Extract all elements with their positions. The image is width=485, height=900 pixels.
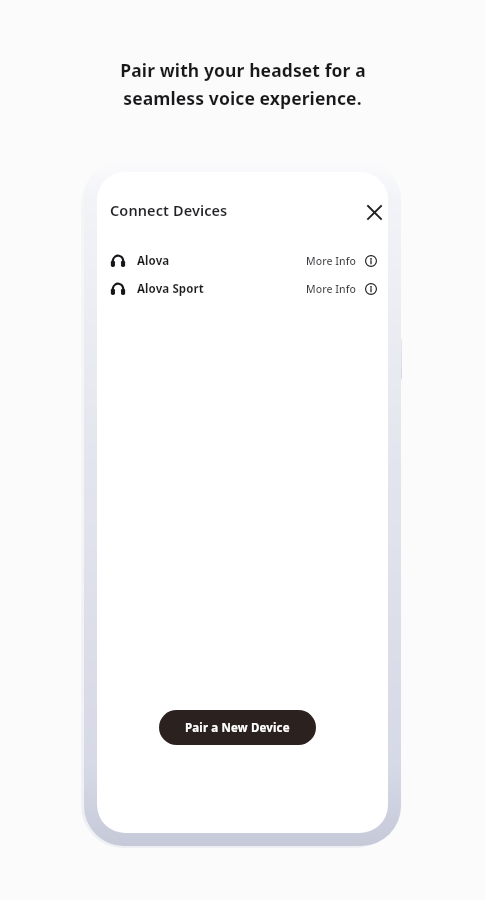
staticText: Alova: [137, 253, 170, 269]
button[interactable]: More Info: [365, 283, 377, 295]
staticText: seamless voice experience.: [123, 86, 362, 110]
staticText: Pair a New Device: [185, 720, 290, 736]
button[interactable]: Close: [360, 198, 388, 226]
staticText: Connect Devices: [110, 200, 228, 220]
button[interactable]: Alova: [97, 248, 388, 274]
staticText: Alova Sport: [137, 281, 204, 297]
staticText: Pair with your headset for a: [120, 58, 366, 82]
staticText: More Info: [306, 254, 356, 268]
button[interactable]: More Info: [365, 255, 377, 267]
button[interactable]: Pair a New Device: [159, 710, 316, 745]
staticText: More Info: [306, 282, 356, 296]
button[interactable]: Alova Sport: [97, 276, 388, 302]
